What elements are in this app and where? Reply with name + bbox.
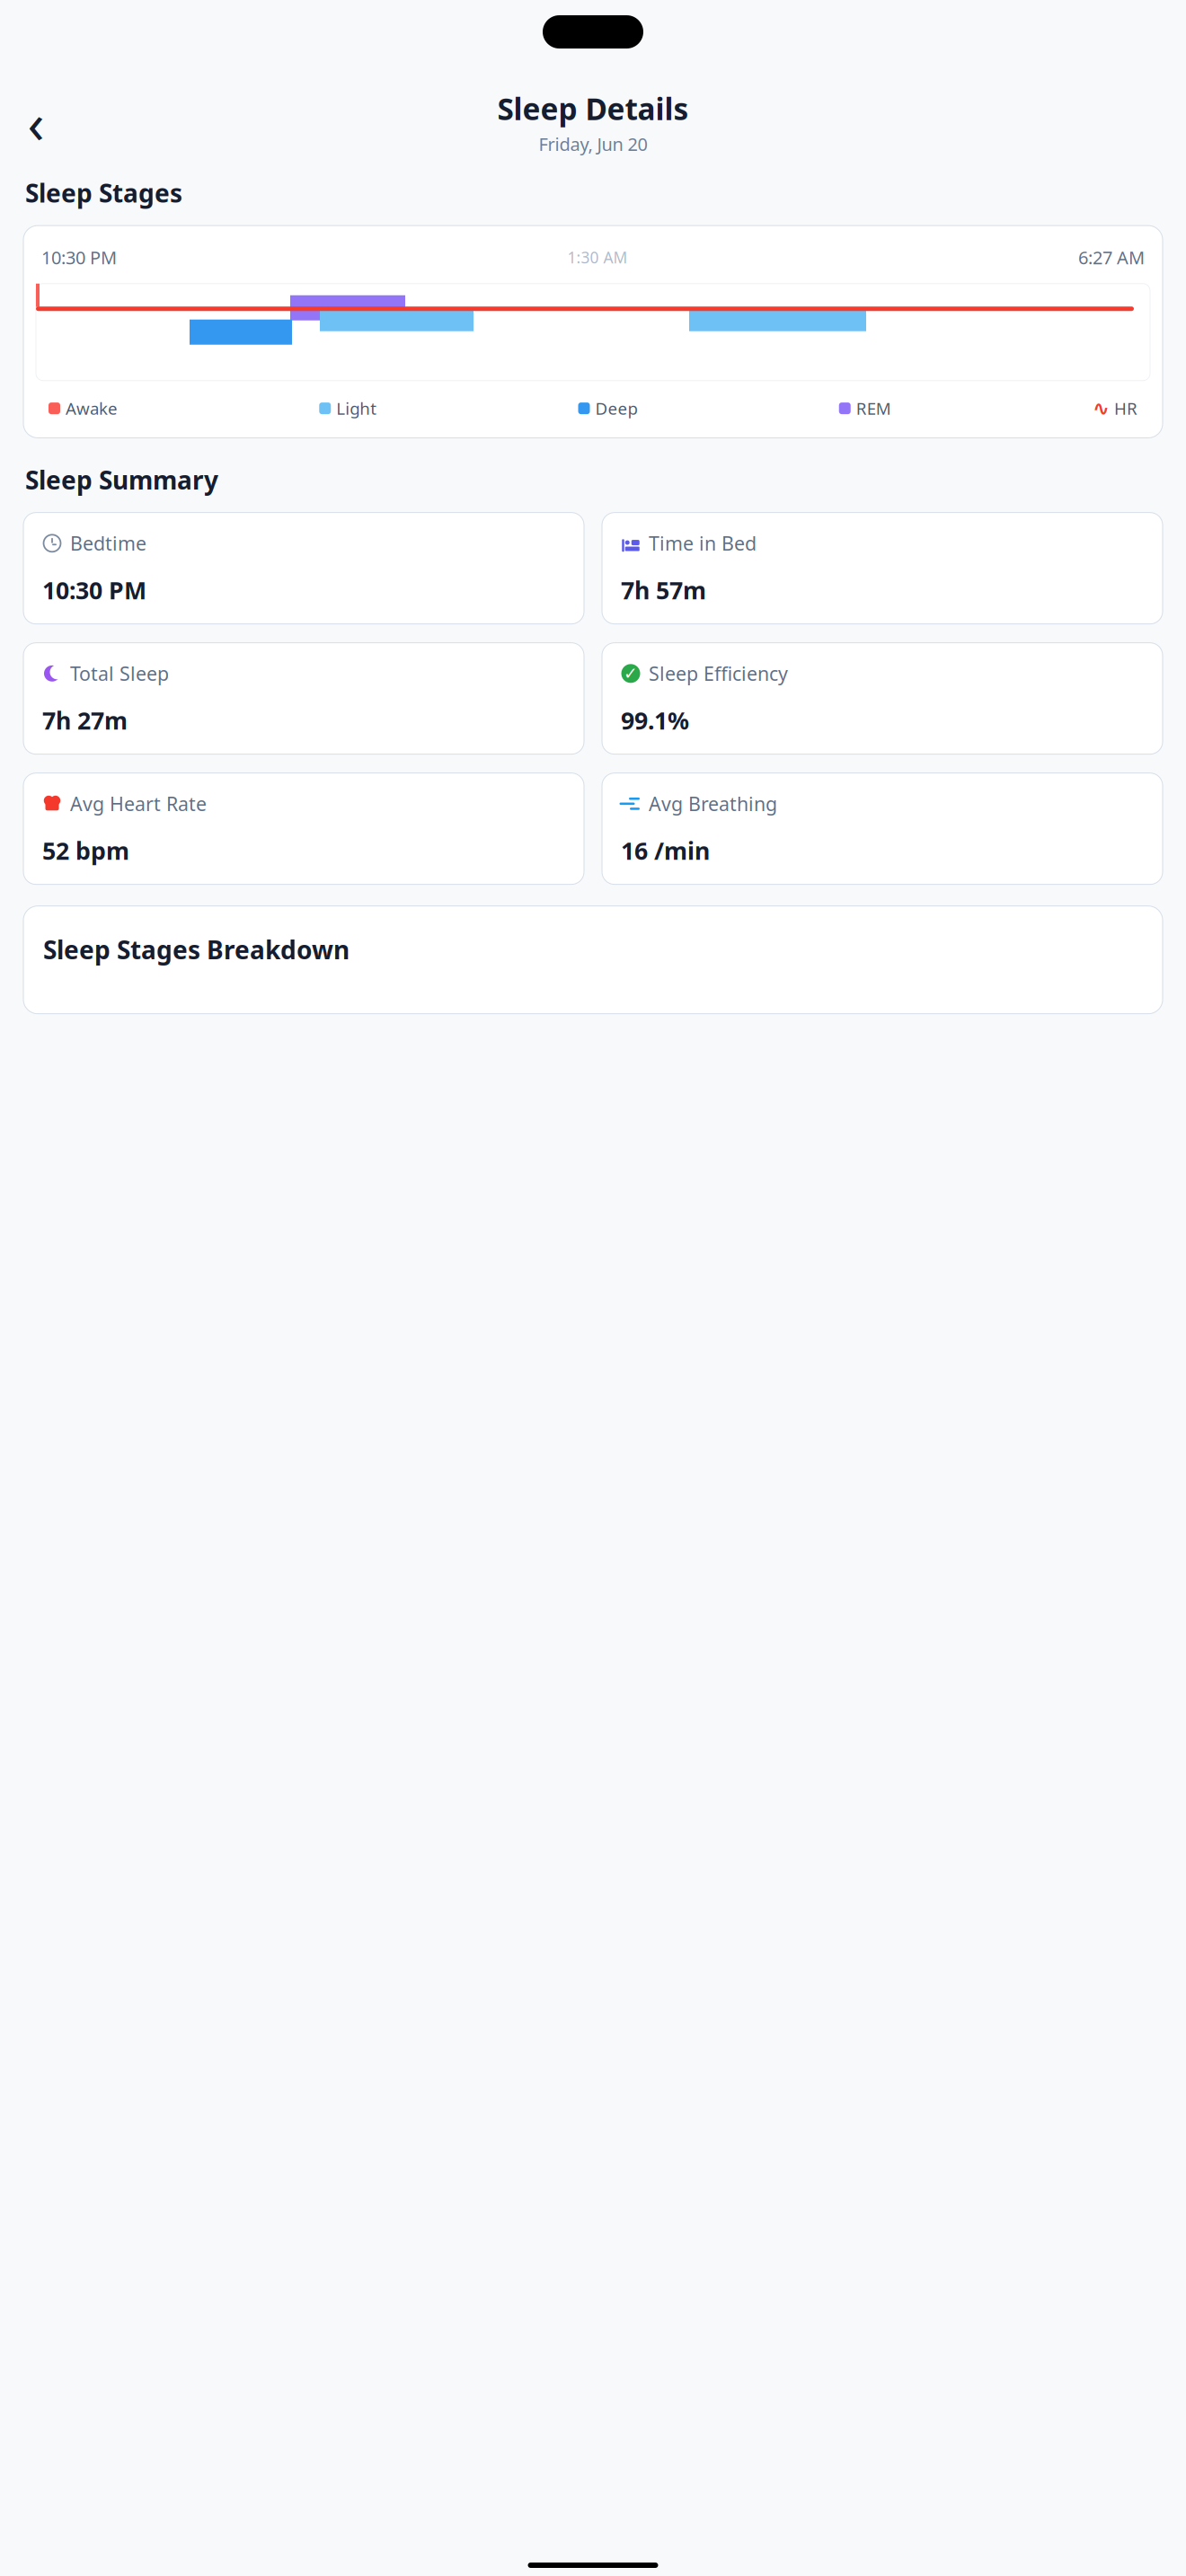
- staticText: Sleep Efficiency: [649, 661, 788, 686]
- button[interactable]: Bedtime: [23, 513, 584, 624]
- staticText: Avg Breathing: [649, 791, 777, 816]
- staticText: 10:30 PM: [42, 574, 146, 606]
- staticText: 7h 57m: [621, 574, 706, 606]
- button[interactable]: ✓: [602, 643, 1163, 754]
- staticText: ✓: [624, 664, 638, 683]
- staticText: 16 /min: [621, 835, 710, 866]
- button[interactable]: Total Sleep: [23, 643, 584, 754]
- staticText: ∿: [1093, 397, 1110, 420]
- staticText: 6:27 AM: [1078, 245, 1145, 269]
- button[interactable]: Avg Heart Rate: [23, 773, 584, 884]
- staticText: Avg Heart Rate: [70, 791, 207, 816]
- staticText: HR: [1114, 397, 1137, 419]
- staticText: Sleep Summary: [25, 463, 218, 496]
- staticText: Sleep Stages: [25, 176, 182, 209]
- staticText: Time in Bed: [649, 531, 757, 556]
- staticText: Deep: [595, 397, 637, 419]
- staticText: Bedtime: [70, 531, 146, 556]
- staticText: ‹: [27, 86, 44, 159]
- staticText: 52 bpm: [42, 835, 129, 866]
- staticText: REM: [856, 397, 891, 419]
- button[interactable]: Avg Breathing: [602, 773, 1163, 884]
- button[interactable]: Time in Bed: [602, 513, 1163, 624]
- staticText: Total Sleep: [70, 661, 169, 686]
- staticText: 1:30 AM: [567, 247, 628, 268]
- staticText: Sleep Details: [497, 89, 689, 128]
- staticText: Sleep Stages Breakdown: [43, 933, 350, 966]
- staticText: Friday, Jun 20: [539, 132, 647, 156]
- staticText: 10:30 PM: [41, 245, 117, 269]
- staticText: Light: [336, 397, 377, 419]
- staticText: 7h 27m: [42, 704, 128, 736]
- staticText: 99.1%: [621, 704, 689, 736]
- button[interactable]: Back: [16, 102, 56, 142]
- staticText: Awake: [66, 397, 118, 419]
